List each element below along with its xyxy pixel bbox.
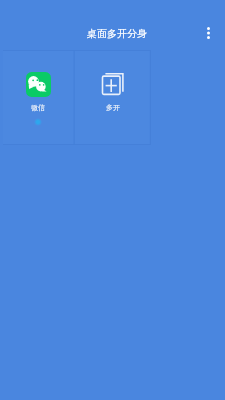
button[interactable]: 微信 <box>0 50 75 145</box>
button[interactable]: 多开 <box>75 50 150 145</box>
staticText: 微信 <box>31 103 45 112</box>
staticText: 桌面多开分身 <box>87 27 147 40</box>
button[interactable]: More options <box>194 19 222 47</box>
staticText: 多开 <box>106 103 120 112</box>
